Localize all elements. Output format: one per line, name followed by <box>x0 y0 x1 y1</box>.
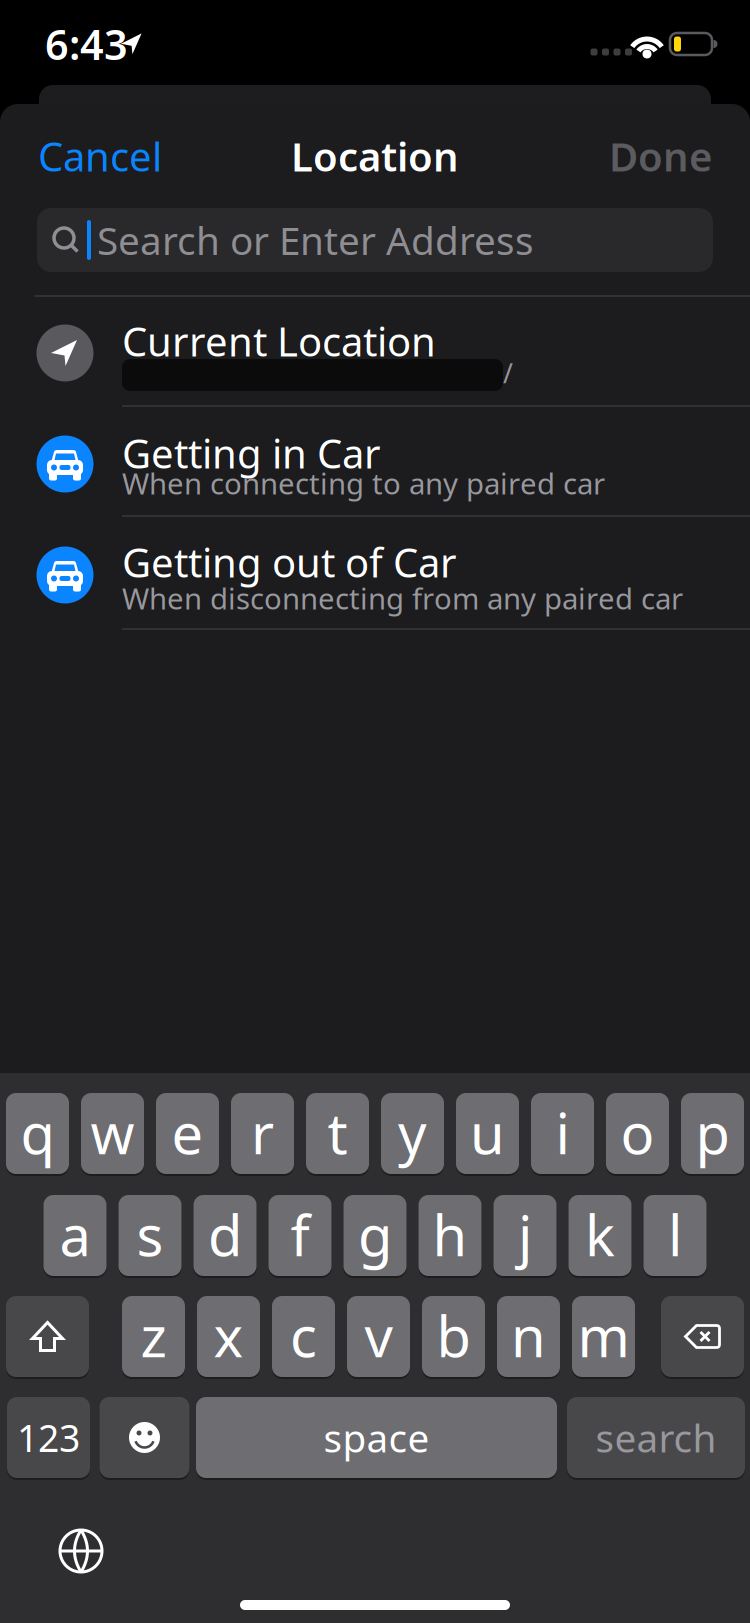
button[interactable]: Getting out of Car <box>0 516 750 629</box>
button[interactable]: g <box>343 1195 406 1280</box>
staticText: y <box>398 1095 427 1170</box>
button[interactable]: Numbers <box>7 1397 90 1482</box>
staticText: v <box>364 1298 392 1373</box>
staticText: l <box>668 1197 682 1272</box>
staticText: When connecting to any paired car <box>122 463 605 502</box>
button[interactable]: Cancel <box>38 126 188 186</box>
staticText: k <box>585 1197 615 1272</box>
button[interactable]: j <box>493 1195 556 1280</box>
staticText: Search or Enter Address <box>97 214 534 266</box>
staticText: h <box>432 1197 467 1272</box>
button[interactable]: Next keyboard <box>53 1523 109 1579</box>
button[interactable]: f <box>268 1195 331 1280</box>
staticText: x <box>213 1298 243 1373</box>
staticText: c <box>290 1298 317 1373</box>
staticText: When disconnecting from any paired car <box>122 578 683 617</box>
staticText: i <box>555 1095 569 1170</box>
staticText: t <box>327 1095 347 1170</box>
staticText: Done <box>609 129 712 182</box>
button[interactable]: b <box>422 1296 485 1381</box>
staticText: q <box>20 1095 54 1170</box>
staticText: 123 <box>17 1413 80 1462</box>
button[interactable]: c <box>272 1296 335 1381</box>
button[interactable]: d <box>193 1195 256 1280</box>
staticText: e <box>171 1095 203 1170</box>
staticText: / <box>503 355 513 391</box>
button[interactable]: z <box>122 1296 185 1381</box>
button[interactable]: space <box>196 1397 557 1482</box>
button[interactable]: Done <box>582 126 712 186</box>
staticText: f <box>290 1197 309 1272</box>
button[interactable]: Search or Enter Address <box>37 208 713 272</box>
button[interactable]: p <box>681 1093 744 1178</box>
button[interactable]: l <box>643 1195 706 1280</box>
staticText: g <box>358 1197 392 1272</box>
button[interactable]: u <box>456 1093 519 1178</box>
button[interactable]: o <box>606 1093 669 1178</box>
button[interactable]: search <box>567 1397 745 1482</box>
button[interactable]: Getting in Car <box>0 406 750 516</box>
button[interactable]: m <box>572 1296 635 1381</box>
staticText: search <box>595 1412 716 1463</box>
staticText: j <box>518 1197 532 1272</box>
button[interactable]: k <box>568 1195 631 1280</box>
button[interactable]: e <box>156 1093 219 1178</box>
button[interactable]: x <box>197 1296 260 1381</box>
button[interactable]: Current Location <box>0 296 750 406</box>
button[interactable]: q <box>6 1093 69 1178</box>
button[interactable]: y <box>381 1093 444 1178</box>
button[interactable]: t <box>306 1093 369 1178</box>
button[interactable]: w <box>81 1093 144 1178</box>
staticText: n <box>511 1298 546 1373</box>
staticText: Cancel <box>38 129 162 182</box>
staticText: Current Location <box>122 314 436 367</box>
staticText: space <box>323 1412 429 1463</box>
staticText: b <box>436 1298 470 1373</box>
staticText: z <box>140 1298 166 1373</box>
button[interactable]: h <box>418 1195 481 1280</box>
staticText: a <box>59 1197 90 1272</box>
button[interactable]: n <box>497 1296 560 1381</box>
staticText: u <box>470 1095 505 1170</box>
button[interactable]: Shift <box>6 1296 89 1381</box>
staticText: s <box>136 1197 163 1272</box>
staticText: Getting out of Car <box>122 535 457 588</box>
staticText: r <box>251 1095 274 1170</box>
button[interactable]: s <box>118 1195 181 1280</box>
button[interactable]: i <box>531 1093 594 1178</box>
staticText: Getting in Car <box>122 426 381 479</box>
staticText: d <box>208 1197 242 1272</box>
staticText: p <box>695 1095 729 1170</box>
staticText: Location <box>291 129 459 182</box>
button[interactable]: v <box>347 1296 410 1381</box>
staticText: o <box>620 1095 654 1170</box>
staticText: m <box>577 1298 629 1373</box>
button[interactable]: r <box>231 1093 294 1178</box>
button[interactable]: Emoji <box>99 1397 189 1482</box>
button[interactable]: a <box>43 1195 106 1280</box>
button[interactable]: Delete <box>661 1296 744 1381</box>
staticText: 6:43 <box>45 17 128 71</box>
staticText: w <box>90 1095 134 1170</box>
